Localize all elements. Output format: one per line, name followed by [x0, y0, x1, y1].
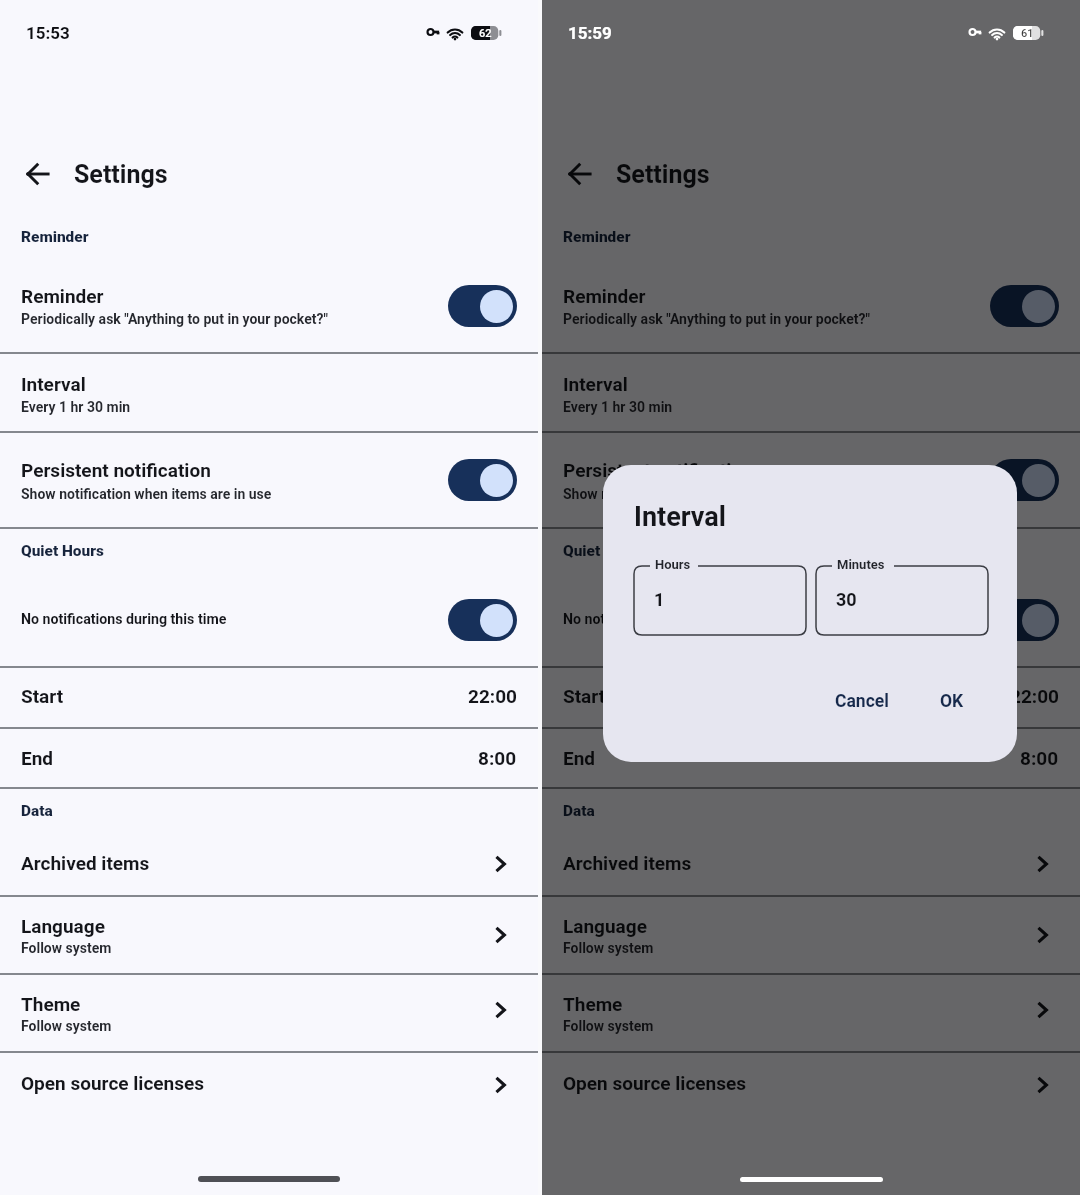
staticText: Start [563, 685, 606, 707]
button[interactable]: Reminder [0, 268, 538, 353]
staticText: Open source licenses [21, 1072, 205, 1094]
staticText: 8:00 [1020, 747, 1059, 769]
staticText: 62 [479, 27, 492, 40]
staticText: Follow system [21, 940, 112, 956]
staticText: Archived items [21, 852, 150, 874]
staticText: 1 [654, 589, 665, 610]
staticText: Persistent notification [563, 459, 753, 481]
staticText: Interval [634, 501, 726, 533]
button[interactable]: Interval [0, 354, 538, 432]
button[interactable]: Persistent notification [990, 459, 1059, 501]
button[interactable]: Theme [0, 975, 538, 1052]
staticText: Every 1 hr 30 min [563, 399, 673, 415]
button[interactable]: Language [478, 912, 524, 958]
staticText: Language [563, 915, 647, 937]
button[interactable]: Quiet hours [990, 599, 1059, 641]
button[interactable]: Persistent notification [542, 433, 1080, 528]
staticText: Settings [616, 160, 710, 189]
button[interactable]: Reminder [448, 285, 517, 327]
button[interactable]: Persistent notification [448, 459, 517, 501]
staticText: Reminder [563, 228, 631, 246]
button[interactable]: Archived items [0, 830, 538, 896]
staticText: Quiet Hours [21, 542, 104, 560]
button[interactable]: Minutes [816, 566, 988, 635]
staticText: Interval [563, 373, 628, 395]
staticText: Settings [74, 160, 168, 189]
button[interactable]: Theme [1020, 987, 1066, 1033]
staticText: Periodically ask "Anything to put in you… [563, 311, 870, 327]
button[interactable]: Theme [478, 987, 524, 1033]
button[interactable]: Language [542, 897, 1080, 974]
button[interactable]: Cancel [823, 683, 901, 720]
button[interactable]: Archived items [1020, 841, 1066, 887]
button[interactable]: Open source licenses [478, 1062, 524, 1108]
button[interactable]: Open source licenses [542, 1053, 1080, 1121]
staticText: No notifications during this time [563, 611, 769, 628]
staticText: Cancel [835, 691, 889, 712]
staticText: Hours [655, 557, 691, 572]
button[interactable]: Interval [542, 354, 1080, 432]
button[interactable]: Archived items [478, 841, 524, 887]
staticText: Every 1 hr 30 min [21, 399, 131, 415]
button[interactable]: Back [557, 151, 603, 197]
button[interactable]: End [542, 729, 1080, 787]
staticText: 30 [836, 589, 857, 610]
staticText: Start [21, 685, 64, 707]
button[interactable]: Open source licenses [1020, 1062, 1066, 1108]
staticText: 22:00 [1010, 685, 1059, 707]
button[interactable]: Persistent notification [0, 433, 538, 528]
staticText: No notifications during this time [21, 611, 227, 628]
staticText: Interval [21, 373, 86, 395]
staticText: Data [21, 802, 53, 820]
button[interactable]: Start [0, 668, 538, 727]
button[interactable]: Language [0, 897, 538, 974]
staticText: Data [563, 802, 595, 820]
staticText: Language [21, 915, 105, 937]
staticText: End [563, 747, 596, 769]
staticText: 8:00 [478, 747, 517, 769]
staticText: Theme [563, 993, 623, 1015]
button[interactable]: Theme [542, 975, 1080, 1052]
staticText: Theme [21, 993, 81, 1015]
staticText: 15:59 [568, 23, 612, 43]
staticText: Reminder [563, 285, 646, 307]
staticText: Follow system [563, 940, 654, 956]
button[interactable]: No notifications during this time [542, 580, 1080, 666]
staticText: Follow system [21, 1018, 112, 1034]
button[interactable]: Reminder [990, 285, 1059, 327]
staticText: Show notification when items are in use [21, 486, 272, 502]
staticText: Quiet Hours [563, 542, 646, 560]
staticText: Minutes [837, 557, 885, 572]
staticText: 22:00 [468, 685, 517, 707]
staticText: Archived items [563, 852, 692, 874]
button[interactable]: Archived items [542, 830, 1080, 896]
button[interactable]: Hours [634, 566, 806, 635]
staticText: Persistent notification [21, 459, 211, 481]
button[interactable]: Language [1020, 912, 1066, 958]
button[interactable]: OK [928, 683, 976, 720]
button[interactable]: Back [15, 151, 61, 197]
staticText: Follow system [563, 1018, 654, 1034]
staticText: Reminder [21, 285, 104, 307]
button[interactable]: Reminder [542, 268, 1080, 353]
staticText: 61 [1021, 27, 1034, 40]
staticText: Reminder [21, 228, 89, 246]
staticText: Open source licenses [563, 1072, 747, 1094]
staticText: OK [940, 691, 964, 712]
staticText: End [21, 747, 54, 769]
staticText: Show notification when items are in use [563, 486, 814, 502]
staticText: 15:53 [26, 23, 70, 43]
button[interactable]: Open source licenses [0, 1053, 538, 1121]
button[interactable]: Start [542, 668, 1080, 727]
button[interactable]: Quiet hours [448, 599, 517, 641]
staticText: Periodically ask "Anything to put in you… [21, 311, 328, 327]
button[interactable]: No notifications during this time [0, 580, 538, 666]
button[interactable]: End [0, 729, 538, 787]
